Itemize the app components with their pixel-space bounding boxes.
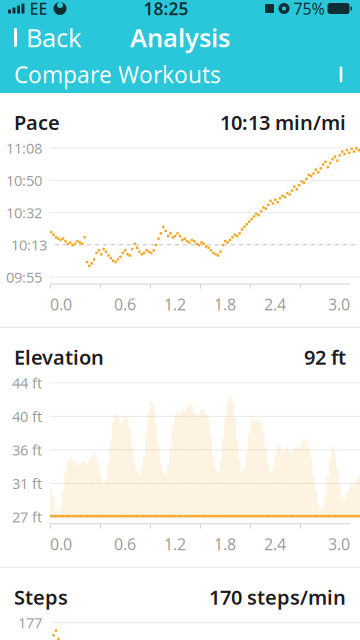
staticText: 3.0 — [328, 294, 350, 315]
staticText: Steps — [14, 584, 68, 610]
staticText: 36 ft — [12, 440, 42, 460]
staticText: 10:13 — [11, 235, 47, 255]
staticText: 18:25 — [143, 0, 188, 20]
staticText: 0.0 — [50, 294, 72, 315]
staticText: 1.2 — [164, 533, 186, 555]
staticText: 3.0 — [328, 533, 350, 555]
staticText: 1.8 — [214, 533, 236, 555]
staticText: 2.4 — [264, 294, 286, 315]
staticText: Pace — [14, 109, 60, 136]
staticText: 0.6 — [114, 533, 136, 555]
staticText: 44 ft — [12, 373, 42, 393]
button[interactable]: Compare Workouts — [0, 56, 360, 92]
staticText: 31 ft — [12, 474, 42, 493]
staticText: EE — [29, 0, 47, 19]
staticText: Analysis — [130, 21, 230, 54]
staticText: 2.4 — [264, 533, 286, 555]
staticText: 10:32 — [6, 203, 42, 222]
staticText: 0.6 — [114, 294, 136, 315]
staticText: 11:08 — [6, 138, 42, 158]
staticText: 10:13 min/mi — [220, 109, 346, 136]
staticText: 1.8 — [214, 294, 236, 315]
staticText: 10:50 — [6, 171, 42, 190]
staticText: 1.2 — [164, 294, 186, 315]
staticText: Back — [26, 21, 82, 54]
staticText: 92 ft — [304, 344, 346, 370]
staticText: 27 ft — [12, 507, 42, 527]
staticText: 170 steps/min — [209, 584, 346, 610]
staticText: 177 — [18, 613, 42, 632]
staticText: Compare Workouts — [14, 59, 221, 89]
staticText: Elevation — [14, 344, 104, 370]
button[interactable]: Back — [0, 15, 82, 60]
staticText: 0.0 — [50, 533, 72, 555]
staticText: 40 ft — [12, 407, 42, 426]
staticText: 09:55 — [6, 267, 42, 287]
staticText: 75% — [293, 0, 324, 19]
